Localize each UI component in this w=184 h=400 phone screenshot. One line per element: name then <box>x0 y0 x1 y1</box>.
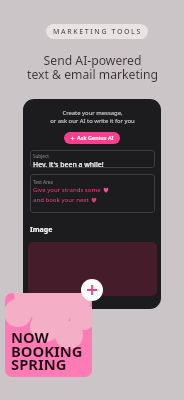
button[interactable]: Text Area <box>30 174 155 213</box>
staticText: NOW BOOKING SPRING <box>11 327 83 374</box>
button[interactable]: Subject <box>30 150 155 168</box>
staticText: Subject <box>33 153 49 159</box>
staticText: Create your message, or ask our AI to wr… <box>50 109 135 125</box>
button[interactable]: MARKETING TOOLS <box>46 24 148 39</box>
staticText: and book your next <box>33 196 89 204</box>
staticText: Image <box>30 225 53 235</box>
staticText: MARKETING TOOLS <box>53 27 142 37</box>
staticText: Ask Genius AI <box>77 134 114 142</box>
staticText: Text Area <box>33 179 53 185</box>
staticText: Send AI-powered text & email marketing <box>27 52 158 83</box>
staticText: Give your strands some <box>33 186 101 194</box>
button[interactable]: Ask Genius AI <box>64 132 120 144</box>
staticText: Hey, it's been a while! <box>33 160 104 168</box>
button[interactable]: Add image <box>81 279 103 301</box>
